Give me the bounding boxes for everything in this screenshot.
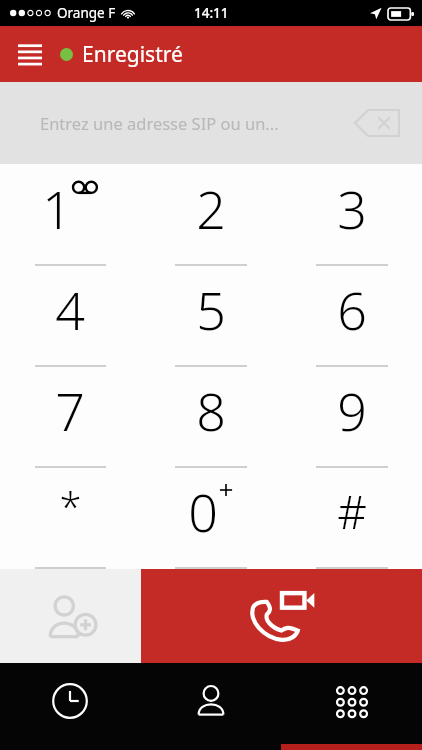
- button[interactable]: 2: [140, 164, 281, 266]
- button[interactable]: 8: [140, 367, 281, 468]
- button[interactable]: 6: [281, 266, 422, 367]
- button[interactable]: #: [281, 468, 422, 569]
- staticText: 8: [196, 375, 226, 446]
- button[interactable]: Backspace: [350, 103, 404, 143]
- staticText: 4: [55, 274, 85, 345]
- staticText: Orange F: [57, 4, 116, 22]
- button[interactable]: Add contact: [0, 569, 141, 663]
- staticText: 6: [337, 274, 367, 345]
- staticText: 5: [196, 274, 226, 345]
- staticText: #: [337, 480, 367, 543]
- staticText: 14:11: [194, 4, 229, 22]
- button[interactable]: Contacts: [140, 663, 281, 750]
- button[interactable]: 5: [140, 266, 281, 367]
- button[interactable]: 0: [140, 468, 281, 569]
- staticText: 7: [55, 375, 85, 446]
- button[interactable]: 3: [281, 164, 422, 266]
- button[interactable]: 1: [0, 164, 140, 266]
- staticText: 3: [337, 173, 367, 244]
- staticText: 9: [337, 375, 367, 446]
- button[interactable]: Menu: [8, 32, 52, 76]
- button[interactable]: Recent calls: [0, 663, 140, 750]
- staticText: Entrez une adresse SIP ou un...: [40, 112, 279, 134]
- staticText: *: [59, 479, 82, 533]
- button[interactable]: *: [0, 468, 140, 569]
- staticText: Enregistré: [82, 40, 183, 69]
- button[interactable]: 4: [0, 266, 140, 367]
- button[interactable]: 9: [281, 367, 422, 468]
- staticText: 0: [188, 476, 218, 547]
- staticText: 2: [196, 173, 226, 244]
- staticText: 1: [42, 173, 72, 244]
- button[interactable]: Video call: [141, 569, 422, 663]
- button[interactable]: Dialpad: [281, 663, 422, 750]
- button[interactable]: 7: [0, 367, 140, 468]
